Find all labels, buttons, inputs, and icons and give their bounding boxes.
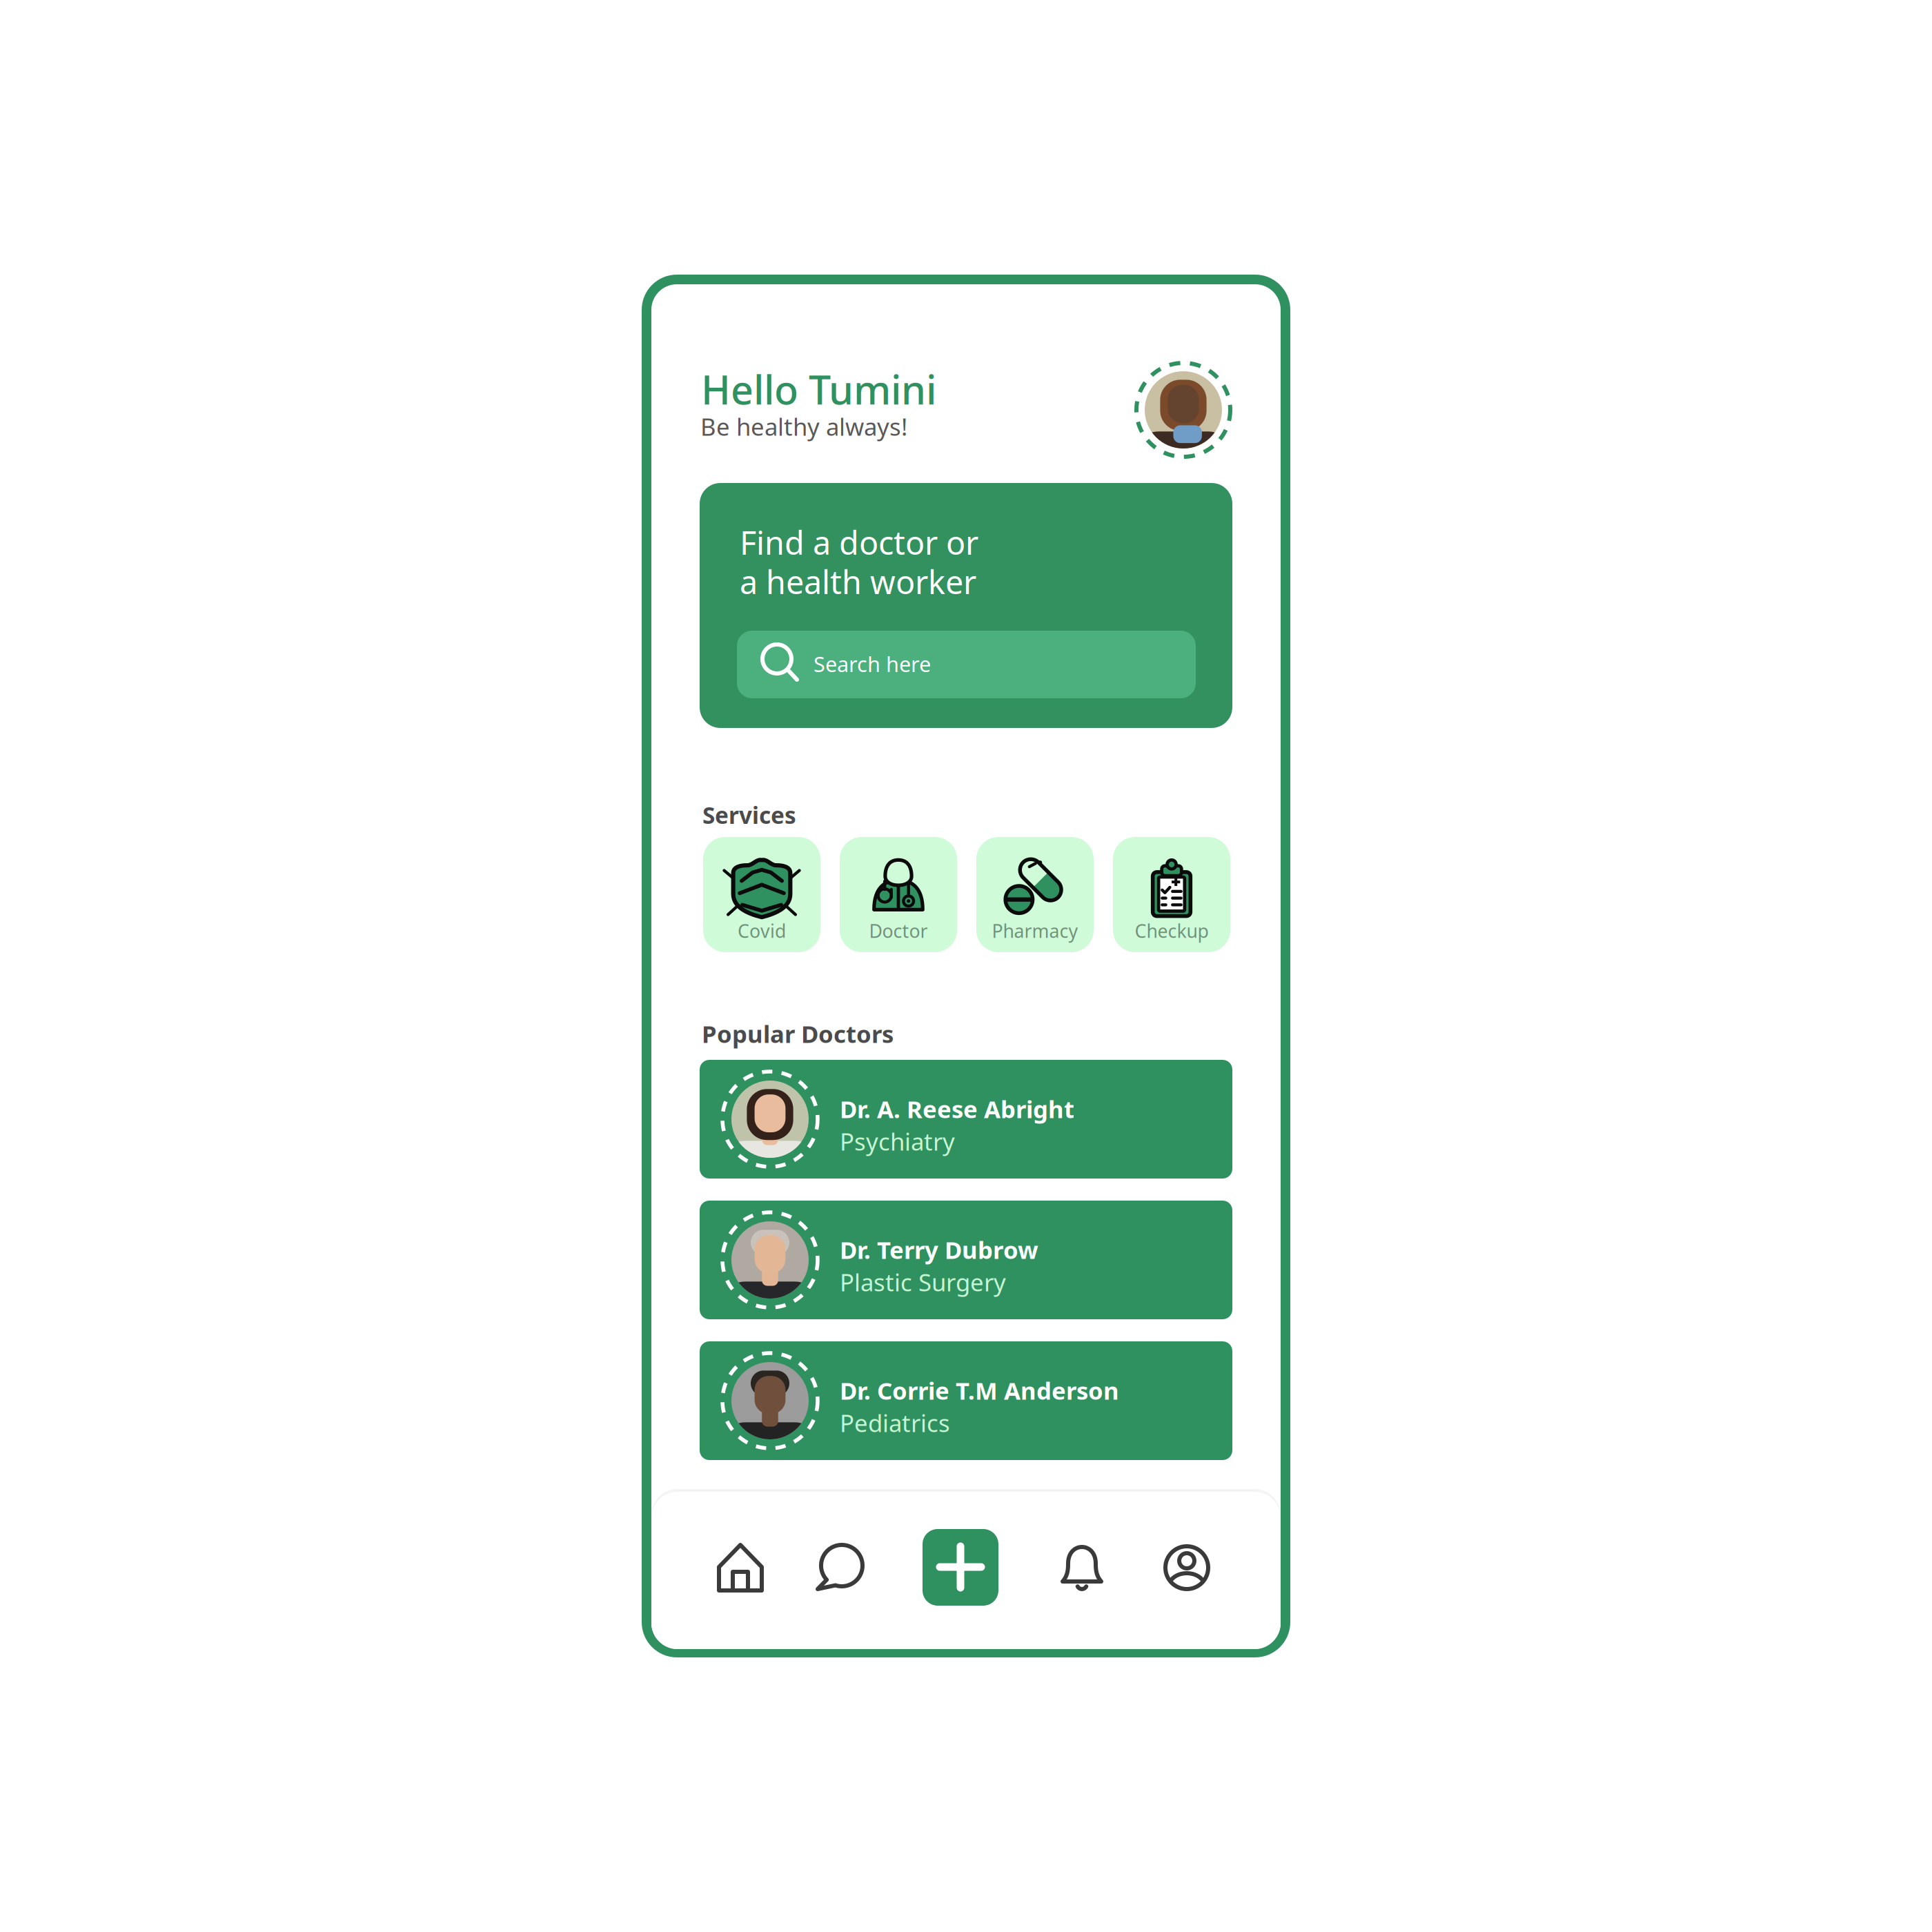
staticText: Popular Doctors: [702, 1018, 894, 1049]
button[interactable]: Checkup: [1113, 837, 1230, 952]
staticText: Plastic Surgery: [840, 1266, 1006, 1298]
staticText: Pharmacy: [992, 919, 1078, 943]
button[interactable]: Dr. Corrie T.M Anderson: [700, 1341, 1232, 1460]
staticText: a health worker: [740, 560, 976, 603]
button[interactable]: Add: [923, 1529, 998, 1606]
staticText: Doctor: [869, 919, 928, 943]
staticText: Dr. Terry Dubrow: [840, 1234, 1038, 1265]
button[interactable]: Dr. A. Reese Abright: [700, 1060, 1232, 1179]
staticText: Checkup: [1135, 919, 1209, 943]
button[interactable]: Dr. Terry Dubrow: [700, 1201, 1232, 1319]
staticText: Psychiatry: [840, 1125, 955, 1157]
staticText: Services: [702, 800, 796, 830]
button[interactable]: Your profile: [1133, 359, 1234, 460]
staticText: Pediatrics: [840, 1407, 950, 1439]
button[interactable]: Home: [713, 1540, 768, 1595]
button[interactable]: Messages: [812, 1540, 867, 1595]
button[interactable]: Doctor: [840, 837, 957, 952]
staticText: Hello Tumini: [701, 363, 936, 415]
staticText: Dr. Corrie T.M Anderson: [840, 1374, 1119, 1406]
button[interactable]: Pharmacy: [976, 837, 1094, 952]
button[interactable]: Notifications: [1054, 1540, 1110, 1595]
staticText: Covid: [738, 919, 786, 943]
button[interactable]: Search here: [737, 631, 1196, 698]
staticText: Search here: [814, 650, 931, 678]
button[interactable]: Covid: [703, 837, 820, 952]
staticText: Find a doctor or: [740, 521, 978, 564]
button[interactable]: Profile: [1159, 1540, 1214, 1595]
staticText: Be healthy always!: [700, 411, 907, 442]
staticText: Dr. A. Reese Abright: [840, 1093, 1074, 1125]
